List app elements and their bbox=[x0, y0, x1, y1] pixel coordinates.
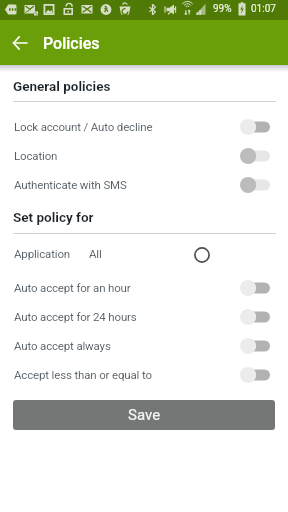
button[interactable]: Location bbox=[0, 141, 288, 170]
button[interactable]: Auto accept for 24 hours bbox=[0, 302, 288, 331]
button[interactable]: Authenticate with SMS bbox=[0, 170, 288, 199]
staticText: All bbox=[89, 247, 102, 260]
staticText: Auto accept always bbox=[14, 339, 240, 352]
button[interactable]: Auto accept always bbox=[0, 331, 288, 360]
staticText: Lock account / Auto decline bbox=[14, 120, 240, 133]
staticText: 99% bbox=[213, 3, 232, 15]
staticText: Accept less than or equal to bbox=[14, 368, 240, 381]
staticText: Auto accept for 24 hours bbox=[14, 310, 240, 323]
button[interactable]: Accept less than or equal to bbox=[0, 360, 288, 389]
staticText: Save bbox=[128, 406, 161, 424]
staticText: Application bbox=[14, 247, 70, 260]
staticText: Set policy for bbox=[13, 209, 94, 225]
staticText: 01:07 bbox=[251, 3, 276, 15]
button[interactable]: Auto accept for an hour bbox=[0, 273, 288, 302]
button[interactable]: Save bbox=[13, 400, 275, 430]
button[interactable]: Application bbox=[0, 238, 288, 268]
staticText: Location bbox=[14, 149, 240, 162]
staticText: Authenticate with SMS bbox=[14, 178, 240, 191]
staticText: Auto accept for an hour bbox=[14, 281, 240, 294]
button[interactable]: Back bbox=[5, 28, 34, 57]
staticText: Policies bbox=[43, 34, 100, 53]
staticText: General policies bbox=[13, 78, 111, 94]
button[interactable]: Lock account / Auto decline bbox=[0, 112, 288, 141]
